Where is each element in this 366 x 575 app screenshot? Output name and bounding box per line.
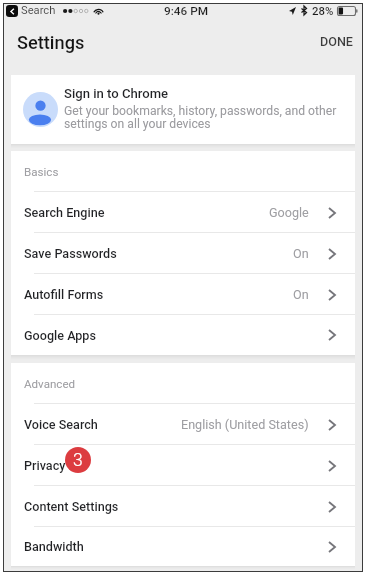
button[interactable]: Voice Search: [11, 404, 355, 445]
staticText: Privacy: [24, 458, 66, 473]
button[interactable]: Sign in to Chrome: [11, 75, 355, 144]
button[interactable]: DONE: [306, 28, 362, 55]
staticText: Advanced: [24, 377, 76, 391]
button[interactable]: Bandwidth: [11, 527, 355, 566]
button[interactable]: Privacy: [11, 445, 355, 486]
staticText: Settings: [17, 32, 85, 53]
staticText: On: [293, 246, 309, 261]
staticText: DONE: [320, 34, 353, 49]
staticText: 3: [73, 450, 83, 471]
staticText: Content Settings: [24, 499, 119, 514]
staticText: Search Engine: [24, 205, 105, 220]
staticText: Sign in to Chrome: [64, 86, 169, 101]
staticText: Get your bookmarks, history, passwords, …: [64, 104, 345, 131]
button[interactable]: Autofill Forms: [11, 274, 355, 315]
staticText: 28%: [312, 4, 334, 17]
staticText: On: [293, 287, 309, 302]
button[interactable]: Save Passwords: [11, 233, 355, 274]
button[interactable]: Back to Search: [6, 5, 18, 17]
staticText: Save Passwords: [24, 246, 117, 261]
staticText: Google: [269, 205, 309, 220]
staticText: Search: [21, 4, 56, 17]
staticText: Voice Search: [24, 417, 98, 432]
button[interactable]: Google Apps: [11, 315, 355, 355]
button[interactable]: Search Engine: [11, 192, 355, 233]
staticText: Google Apps: [24, 328, 96, 343]
staticText: Autofill Forms: [24, 287, 104, 302]
button[interactable]: Content Settings: [11, 486, 355, 527]
staticText: English (United States): [181, 417, 309, 432]
staticText: Bandwidth: [24, 539, 84, 554]
staticText: Basics: [24, 165, 59, 179]
staticText: 9:46 PM: [164, 4, 209, 17]
